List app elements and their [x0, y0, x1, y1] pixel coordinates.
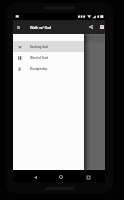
button[interactable]: Open navigation drawer — [13, 20, 23, 34]
button[interactable]: Back — [30, 172, 40, 182]
button[interactable]: More options — [96, 20, 107, 34]
button[interactable]: Word of God — [13, 52, 84, 63]
staticText: Seeking God — [30, 45, 48, 49]
staticText: Walk w/ God — [30, 25, 52, 30]
button[interactable]: Share — [85, 20, 96, 34]
button[interactable]: Home — [56, 172, 66, 182]
button[interactable]: Seeking God — [13, 41, 84, 52]
staticText: Word of God — [30, 56, 48, 60]
button[interactable]: Discipleship — [13, 63, 84, 74]
button[interactable]: Recent apps — [83, 172, 93, 182]
staticText: Discipleship — [30, 67, 48, 71]
